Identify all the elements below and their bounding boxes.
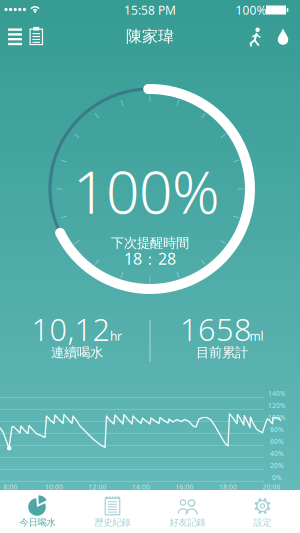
staticText: 100% xyxy=(268,413,286,422)
staticText: 8:00 xyxy=(3,483,17,491)
staticText: 0% xyxy=(272,473,282,482)
staticText: 120% xyxy=(268,401,286,410)
button[interactable]: Water xyxy=(277,28,289,46)
staticText: hr xyxy=(110,328,122,344)
staticText: 下次提醒時間 xyxy=(111,235,189,251)
staticText: 歷史紀錄 xyxy=(94,517,130,528)
staticText: 60% xyxy=(270,437,284,446)
button[interactable]: Activity xyxy=(249,27,263,47)
staticText: 18:00 xyxy=(219,483,237,491)
staticText: 100% xyxy=(235,2,266,18)
staticText: 陳家瑋 xyxy=(126,27,174,46)
button[interactable]: 歷史紀錄 xyxy=(75,490,150,533)
staticText: 16:00 xyxy=(175,483,193,491)
staticText: 好友記錄 xyxy=(169,517,205,528)
staticText: 連續喝水 xyxy=(51,344,103,361)
staticText: 今日喝水 xyxy=(19,517,55,528)
staticText: 15:58 PM xyxy=(124,2,176,18)
button[interactable]: 今日喝水 xyxy=(0,490,75,533)
button[interactable]: Records xyxy=(29,26,43,45)
staticText: 20:00 xyxy=(262,483,280,491)
staticText: ml xyxy=(249,328,263,344)
staticText: 20% xyxy=(270,461,284,470)
staticText: 40% xyxy=(270,449,284,458)
button[interactable]: 設定 xyxy=(225,490,300,533)
staticText: 12:00 xyxy=(88,483,106,491)
staticText: 1658 xyxy=(180,309,252,349)
staticText: 80% xyxy=(270,425,284,434)
button[interactable]: Menu xyxy=(8,28,22,45)
staticText: 設定 xyxy=(253,517,271,528)
staticText: 18：28 xyxy=(124,248,176,269)
staticText: 14:00 xyxy=(132,483,150,491)
staticText: 10,12 xyxy=(31,309,110,349)
staticText: 10:00 xyxy=(45,483,63,491)
staticText: 目前累計 xyxy=(196,344,248,361)
staticText: 100% xyxy=(73,152,220,230)
button[interactable]: 好友記錄 xyxy=(150,490,225,533)
staticText: 140% xyxy=(268,389,286,398)
